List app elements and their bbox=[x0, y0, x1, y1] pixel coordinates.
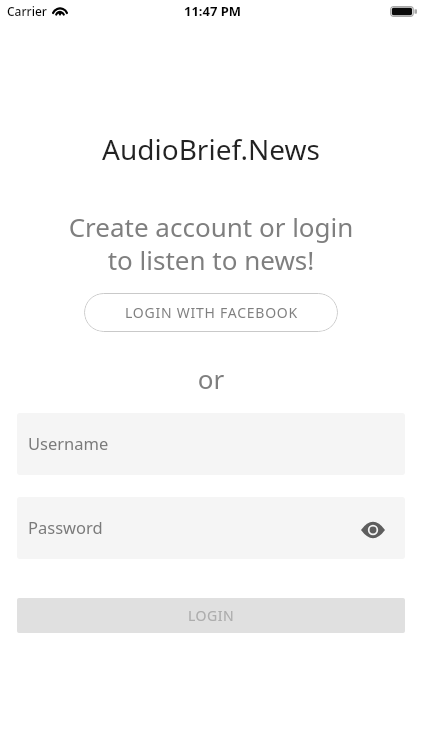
button[interactable]: LOGIN bbox=[17, 598, 405, 633]
staticText: Carrier bbox=[7, 3, 47, 19]
button[interactable]: Username bbox=[17, 413, 405, 475]
staticText: Create account or login to listen to new… bbox=[0, 209, 422, 278]
staticText: LOGIN bbox=[188, 606, 235, 625]
button[interactable]: Show password bbox=[356, 513, 390, 547]
button[interactable]: Password bbox=[17, 497, 405, 559]
staticText: or bbox=[0, 361, 422, 396]
staticText: LOGIN WITH FACEBOOK bbox=[125, 303, 298, 322]
staticText: AudioBrief.News bbox=[0, 130, 422, 168]
staticText: 11:47 PM bbox=[184, 2, 242, 20]
staticText: Password bbox=[28, 516, 103, 538]
button[interactable]: LOGIN WITH FACEBOOK bbox=[84, 293, 338, 332]
staticText: Username bbox=[28, 432, 109, 454]
